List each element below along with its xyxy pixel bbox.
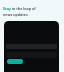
staticText: in the loop of — [11, 6, 36, 11]
staticText: news updates — [3, 12, 28, 17]
button[interactable] — [7, 59, 23, 64]
staticText: Stay — [3, 6, 11, 11]
